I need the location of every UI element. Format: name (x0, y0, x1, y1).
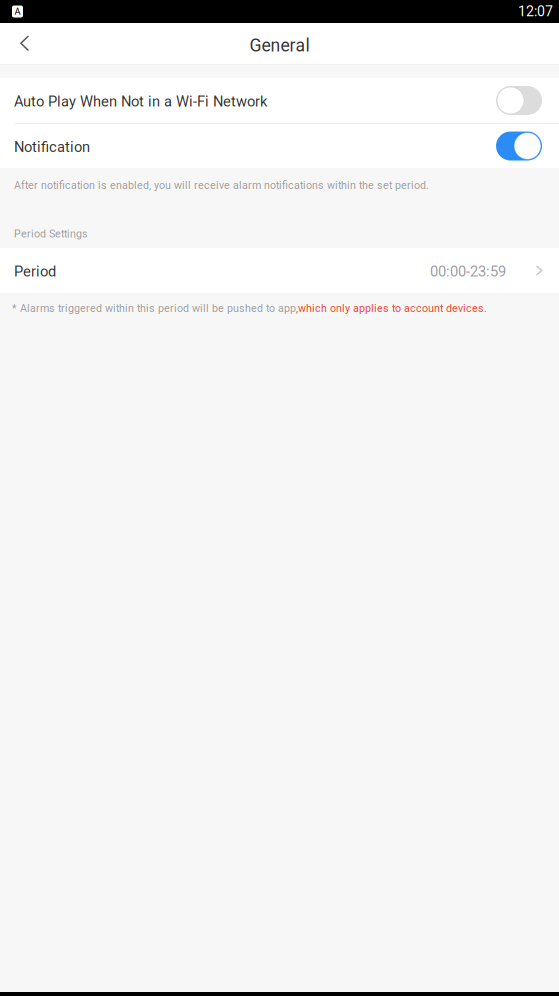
staticText: ,which only applies to account devices. (296, 302, 487, 314)
button[interactable]: Notification (0, 124, 559, 168)
button[interactable]: Auto Play When Not in a Wi-Fi Network (0, 78, 559, 123)
staticText: Notification (14, 138, 90, 156)
staticText: Period (14, 263, 56, 280)
button[interactable]: Back (0, 23, 47, 64)
staticText: Period Settings (14, 227, 88, 240)
staticText: * Alarms triggered within this period wi… (12, 302, 296, 314)
staticText: 00:00-23:59 (430, 263, 506, 280)
staticText: After notification is enabled, you will … (14, 179, 429, 191)
staticText: Auto Play When Not in a Wi-Fi Network (14, 93, 267, 110)
staticText: 12:07 (518, 3, 553, 20)
staticText: A (14, 6, 20, 17)
staticText: General (249, 35, 309, 56)
button[interactable]: Period (0, 248, 559, 293)
